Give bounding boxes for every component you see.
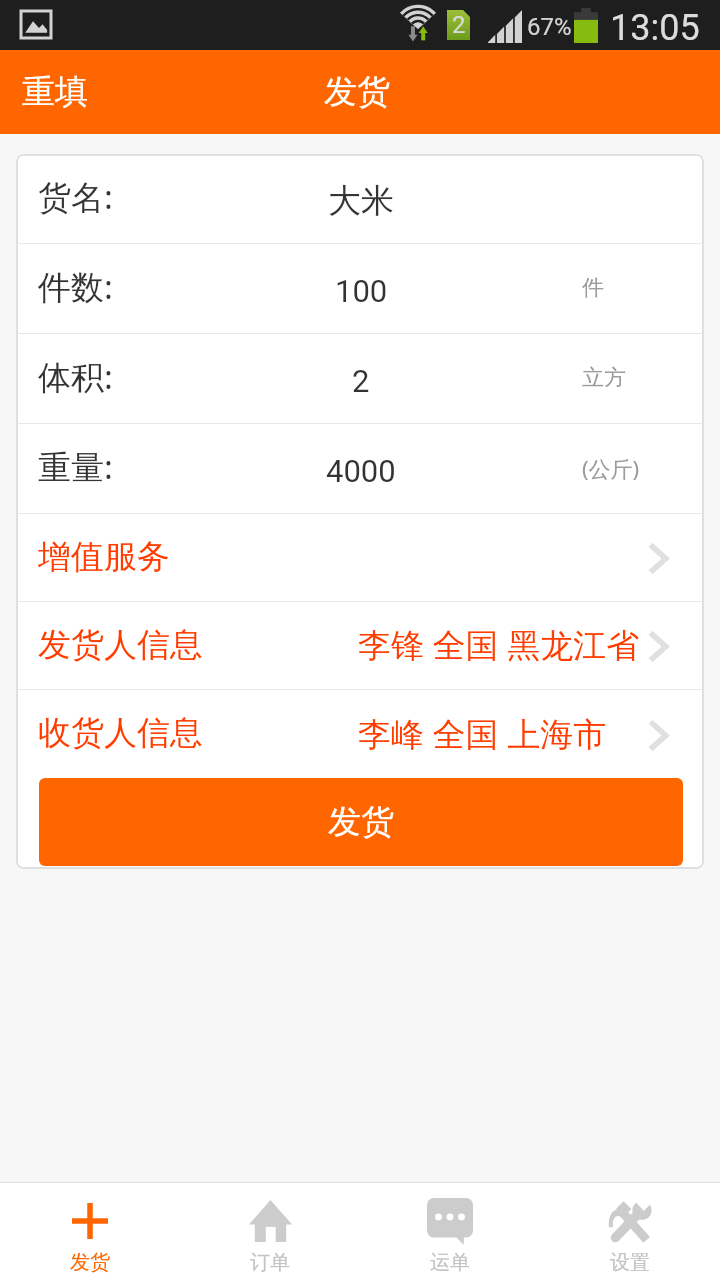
staticText: 设置 bbox=[610, 1250, 650, 1275]
staticText: 件数: bbox=[38, 264, 113, 309]
staticText: 李峰 全国 上海市 bbox=[358, 711, 607, 756]
staticText: 发货人信息 bbox=[38, 624, 203, 666]
staticText: 4000 bbox=[326, 453, 396, 489]
button[interactable]: 发货人信息 bbox=[16, 602, 704, 689]
staticText: 67% bbox=[527, 13, 572, 41]
staticText: 重量: bbox=[38, 444, 113, 489]
staticText: 件 bbox=[582, 274, 604, 302]
button[interactable]: 重量: bbox=[16, 424, 704, 513]
button[interactable]: 发货 bbox=[39, 778, 683, 866]
button[interactable]: 收货人信息 bbox=[16, 690, 704, 778]
staticText: 发货 bbox=[328, 801, 394, 843]
staticText: 增值服务 bbox=[38, 536, 170, 578]
staticText: 2 bbox=[352, 363, 370, 399]
staticText: (公斤) bbox=[582, 453, 640, 483]
button[interactable]: 订单 bbox=[180, 1183, 360, 1280]
button[interactable]: 货名: bbox=[16, 154, 704, 243]
staticText: 发货 bbox=[70, 1250, 110, 1275]
staticText: 立方 bbox=[582, 364, 626, 392]
staticText: 2 bbox=[452, 11, 466, 39]
staticText: 13:05 bbox=[610, 7, 700, 49]
button[interactable]: 增值服务 bbox=[16, 514, 704, 601]
staticText: 体积: bbox=[38, 354, 113, 399]
staticText: 重填 bbox=[22, 71, 88, 113]
button[interactable]: 设置 bbox=[540, 1183, 720, 1280]
staticText: 100 bbox=[335, 273, 388, 309]
staticText: 发货 bbox=[324, 71, 390, 113]
button[interactable]: 件数: bbox=[16, 244, 704, 333]
button[interactable]: 发货 bbox=[0, 1183, 180, 1280]
staticText: 货名: bbox=[38, 174, 113, 219]
staticText: 订单 bbox=[250, 1250, 290, 1275]
staticText: 收货人信息 bbox=[38, 712, 203, 754]
staticText: 大米 bbox=[328, 180, 394, 222]
staticText: 李锋 全国 黑龙江省 bbox=[358, 622, 640, 667]
button[interactable]: 重填 bbox=[0, 50, 110, 134]
button[interactable]: 运单 bbox=[360, 1183, 540, 1280]
staticText: 运单 bbox=[430, 1250, 470, 1275]
button[interactable]: 体积: bbox=[16, 334, 704, 423]
